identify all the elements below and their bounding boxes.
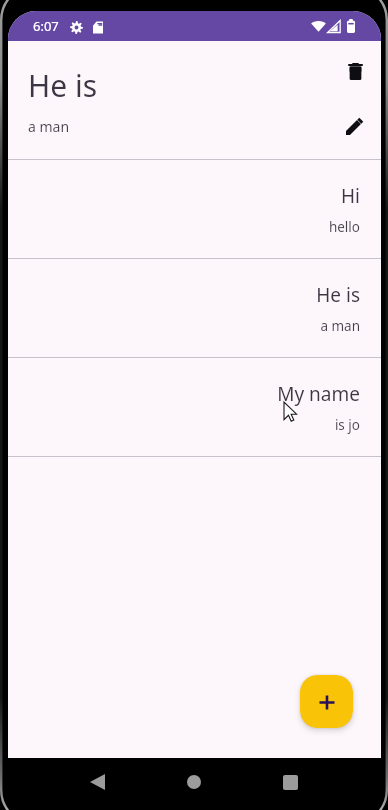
- staticText: is jo: [334, 416, 360, 434]
- button[interactable]: Add: [300, 675, 353, 728]
- staticText: He is: [28, 65, 98, 106]
- button[interactable]: My name: [8, 358, 381, 456]
- staticText: My name: [277, 381, 360, 407]
- button[interactable]: Edit: [333, 104, 377, 148]
- button[interactable]: Recents: [242, 758, 339, 810]
- button[interactable]: Home: [145, 758, 242, 810]
- staticText: hello: [328, 218, 360, 236]
- button[interactable]: Hi: [8, 160, 381, 258]
- button[interactable]: Delete: [333, 49, 377, 93]
- button[interactable]: Back: [49, 758, 145, 810]
- staticText: 6:07: [33, 17, 59, 35]
- staticText: He is: [316, 282, 360, 308]
- staticText: Hi: [341, 183, 360, 209]
- staticText: a man: [28, 117, 70, 136]
- button[interactable]: He is: [8, 259, 381, 357]
- staticText: a man: [320, 317, 360, 335]
